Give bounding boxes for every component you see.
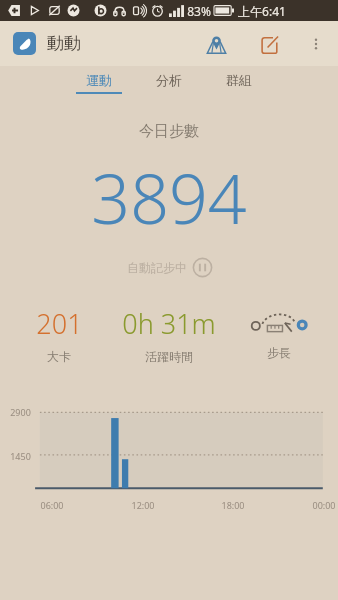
button[interactable]: 201 [10, 305, 108, 364]
staticText: 2900 [10, 406, 31, 418]
staticText: 今日步數 [139, 122, 199, 141]
staticText: 動動 [47, 33, 81, 54]
button[interactable]: 運動 [76, 70, 122, 94]
staticText: 12:00 [131, 499, 155, 511]
staticText: 06:00 [40, 499, 64, 511]
button[interactable]: 0h 31m [108, 305, 230, 364]
staticText: 分析 [156, 72, 182, 88]
staticText: 00:00 [312, 499, 336, 511]
staticText: 0h 31m [122, 305, 216, 342]
staticText: 201 [36, 305, 83, 342]
button[interactable]: Map [196, 24, 236, 64]
button[interactable]: 群組 [216, 70, 262, 94]
staticText: 運動 [86, 72, 112, 88]
staticText: 自動記步中 [127, 260, 187, 275]
staticText: 群組 [226, 72, 252, 88]
button[interactable]: More options [298, 26, 334, 62]
staticText: 活躍時間 [145, 349, 193, 364]
button[interactable]: 自動記步中 [0, 258, 338, 277]
staticText: 大卡 [47, 349, 71, 364]
staticText: 1450 [10, 450, 31, 462]
button[interactable]: Edit [250, 24, 290, 64]
staticText: 上午6:41 [238, 3, 286, 19]
button[interactable] [13, 32, 36, 55]
staticText: 3894 [91, 151, 247, 244]
staticText: 18:00 [221, 499, 245, 511]
other: Step length [250, 311, 308, 335]
button[interactable]: 分析 [146, 70, 192, 94]
staticText: 83% [187, 3, 211, 19]
staticText: 步長 [267, 345, 291, 360]
button[interactable]: Step length [230, 305, 328, 360]
